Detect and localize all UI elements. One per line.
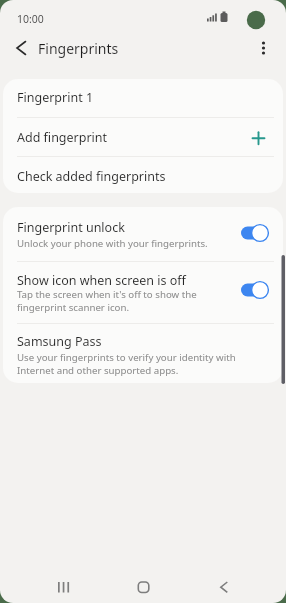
staticText: Samsung Pass	[17, 333, 102, 350]
staticText: Tap the screen when it's off to show the	[17, 288, 197, 301]
staticText: 10:00	[17, 12, 44, 26]
staticText: Unlock your phone with your fingerprints…	[17, 237, 208, 250]
staticText: Internet and other supported apps.	[17, 364, 179, 377]
staticText: Fingerprints	[38, 39, 119, 58]
staticText: Fingerprint 1	[17, 89, 94, 106]
staticText: Use your fingerprints to verify your ide…	[17, 351, 236, 364]
staticText: fingerprint scanner icon.	[17, 301, 129, 314]
staticText: Fingerprint unlock	[17, 219, 125, 236]
staticText: Check added fingerprints	[17, 168, 166, 185]
staticText: Add fingerprint	[17, 129, 108, 146]
staticText: Show icon when screen is off	[17, 272, 186, 289]
